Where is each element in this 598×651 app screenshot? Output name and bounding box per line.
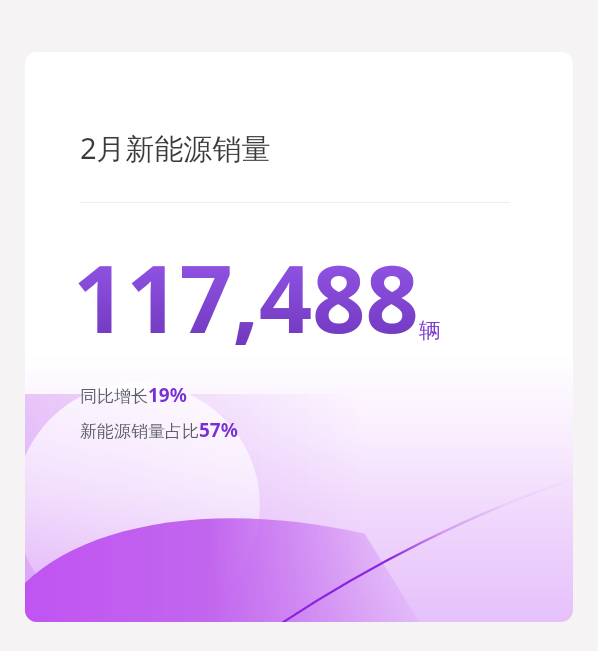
staticText: 117,488 xyxy=(73,234,419,361)
staticText: 同比增长19% xyxy=(80,382,187,408)
button[interactable]: 2月新能源销量 xyxy=(25,52,573,622)
staticText: 新能源销量占比57% xyxy=(80,417,238,443)
staticText: 2月新能源销量 xyxy=(80,128,271,168)
staticText: 辆 xyxy=(419,317,441,345)
